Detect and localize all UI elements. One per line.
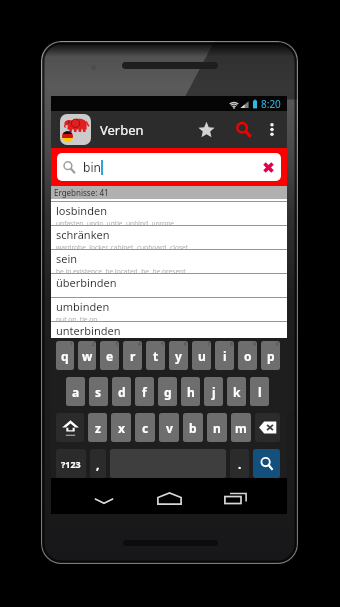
staticText: a	[72, 384, 80, 400]
button[interactable]: Search	[228, 111, 260, 148]
button[interactable]: y	[169, 341, 188, 370]
button[interactable]: j	[204, 377, 223, 406]
staticText: x	[118, 420, 125, 436]
button[interactable]: s	[89, 377, 108, 406]
staticText: 8	[230, 341, 233, 348]
staticText: 6	[184, 341, 187, 348]
button[interactable]: r	[123, 341, 142, 370]
button[interactable]: sein	[51, 250, 287, 273]
button[interactable]: h	[181, 377, 200, 406]
button[interactable]: a	[66, 377, 85, 406]
button[interactable]: e	[100, 341, 119, 370]
staticText: k	[233, 384, 241, 400]
button[interactable]: unterbinden	[51, 322, 287, 338]
button[interactable]: bin	[57, 153, 281, 181]
staticText: p	[267, 348, 275, 364]
button[interactable]: t	[146, 341, 165, 370]
staticText: 3	[115, 341, 118, 348]
button[interactable]: Search	[253, 449, 280, 478]
staticText: ,	[96, 456, 100, 472]
staticText: umbinden	[56, 299, 110, 314]
staticText: q	[61, 348, 69, 364]
staticText: sein	[56, 251, 78, 266]
button[interactable]: b	[183, 413, 203, 442]
staticText: überbinden	[56, 275, 117, 290]
staticText: 4	[138, 341, 141, 348]
button[interactable]: Shift	[56, 413, 84, 442]
staticText: m	[235, 420, 247, 436]
button[interactable]: c	[135, 413, 155, 442]
button[interactable]: i	[215, 341, 234, 370]
button[interactable]: ?123	[56, 449, 86, 478]
button[interactable]: n	[207, 413, 227, 442]
button[interactable]: Backspace	[255, 413, 280, 442]
staticText: 0	[276, 341, 279, 348]
staticText: v	[166, 420, 173, 436]
button[interactable]: q	[56, 341, 74, 370]
staticText: b	[189, 420, 197, 436]
staticText: g	[164, 384, 172, 400]
button[interactable]: m	[231, 413, 251, 442]
staticText: i	[223, 348, 227, 364]
staticText: 1	[70, 341, 73, 348]
button[interactable]: x	[111, 413, 131, 442]
button[interactable]: Recent apps	[213, 484, 257, 512]
button[interactable]: w	[78, 341, 96, 370]
button[interactable]: Back	[82, 487, 126, 515]
staticText: wardrobe, locker, cabinet, cupboard, clo…	[56, 243, 189, 249]
button[interactable]: ,	[90, 449, 106, 478]
button[interactable]: .	[230, 449, 249, 478]
button[interactable]: l	[250, 377, 269, 406]
staticText: schränken	[56, 227, 110, 242]
staticText: j	[212, 384, 216, 400]
button[interactable]: g	[158, 377, 177, 406]
staticText: Verben	[100, 121, 144, 139]
staticText: 8:20	[261, 97, 281, 111]
staticText: be in existence, be located, be, be pres…	[56, 267, 186, 273]
staticText: e	[106, 348, 114, 364]
button[interactable]: k	[227, 377, 246, 406]
staticText: .	[238, 456, 242, 472]
staticText: h	[187, 384, 195, 400]
staticText: c	[142, 420, 149, 436]
staticText: 7	[207, 341, 210, 348]
staticText: unfasten, undo, untie, unbind, unrope	[56, 219, 175, 225]
staticText: bin	[83, 159, 101, 175]
button[interactable]: App icon	[60, 114, 91, 145]
button[interactable]: p	[261, 341, 280, 370]
staticText: put on, tie on	[56, 315, 98, 321]
button[interactable]: überbinden	[51, 274, 287, 297]
staticText: 2	[92, 341, 95, 348]
button[interactable]: More options	[260, 111, 284, 148]
staticText: d	[118, 384, 126, 400]
staticText: y	[175, 348, 182, 364]
staticText: 9	[253, 341, 256, 348]
button[interactable]: umbinden	[51, 298, 287, 321]
staticText: t	[153, 348, 159, 364]
button[interactable]: z	[88, 413, 107, 442]
button[interactable]: d	[112, 377, 131, 406]
staticText: Ergebnisse: 41	[54, 187, 109, 198]
staticText: unterbinden	[56, 323, 121, 338]
button[interactable]: Favorites	[184, 111, 228, 148]
staticText: w	[82, 348, 93, 364]
button[interactable]: Home	[147, 484, 191, 512]
staticText: n	[213, 420, 221, 436]
staticText: o	[244, 348, 252, 364]
button[interactable]: schränken	[51, 226, 287, 249]
staticText: f	[142, 384, 147, 400]
staticText: losbinden	[56, 203, 107, 218]
button[interactable]: v	[159, 413, 179, 442]
staticText: z	[95, 420, 101, 436]
button[interactable]: losbinden	[51, 202, 287, 225]
button[interactable]: o	[238, 341, 257, 370]
staticText: u	[198, 348, 206, 364]
button[interactable]: f	[135, 377, 154, 406]
staticText: ?123	[61, 458, 81, 470]
staticText: l	[258, 384, 262, 400]
staticText: 5	[161, 341, 164, 348]
button[interactable]: Clear search	[257, 156, 279, 178]
button[interactable]: u	[192, 341, 211, 370]
